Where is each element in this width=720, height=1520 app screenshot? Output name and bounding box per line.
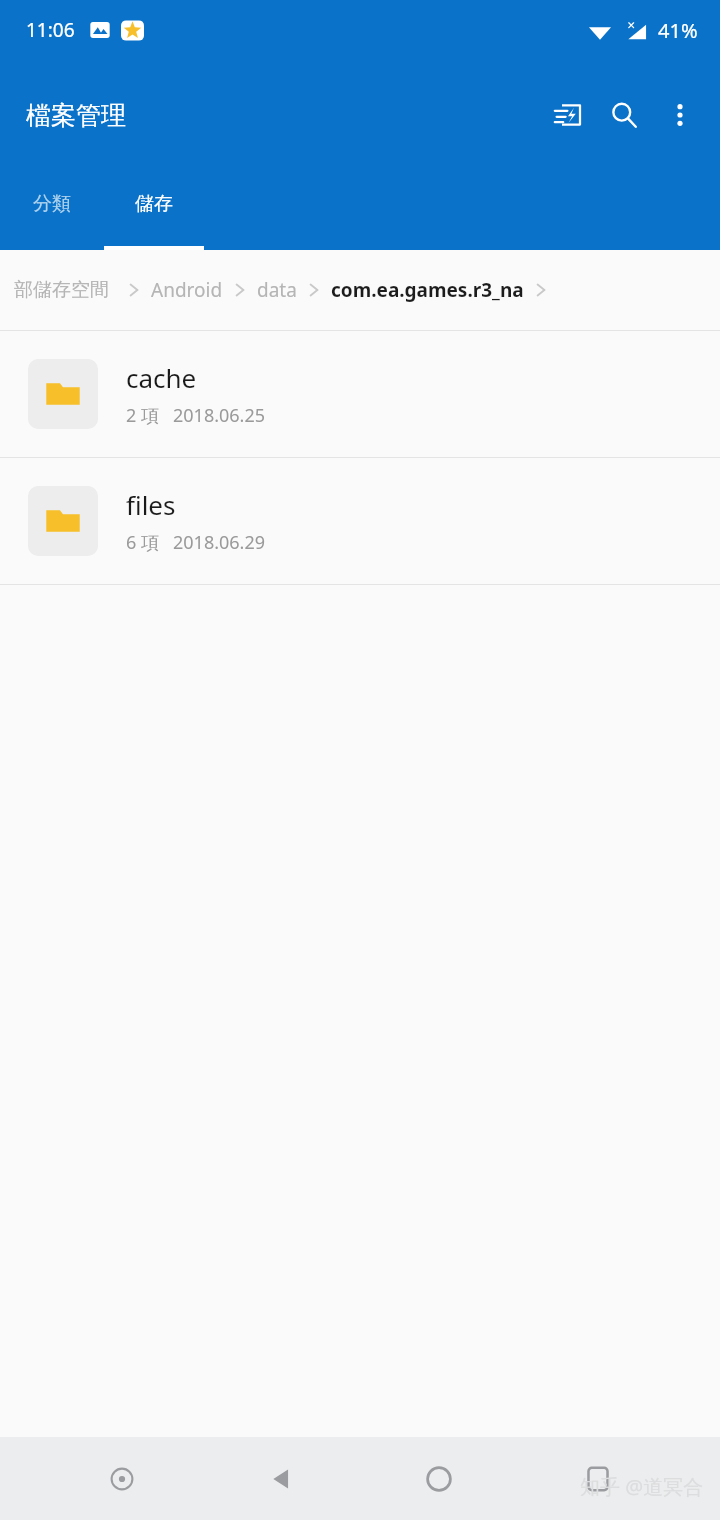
staticText: 儲存 <box>135 192 173 216</box>
button[interactable]: More options <box>652 87 708 143</box>
staticText: 11:06 <box>26 17 75 43</box>
staticText: 檔案管理 <box>26 100 126 131</box>
button[interactable]: Assistant <box>86 1443 158 1515</box>
staticText: 知乎 @道冥合 <box>580 1473 704 1500</box>
staticText: 分類 <box>33 192 71 216</box>
button[interactable]: 儲存 <box>104 170 204 250</box>
button[interactable]: files <box>0 458 720 584</box>
button[interactable]: Quick transfer <box>540 87 596 143</box>
button[interactable]: data <box>257 277 297 303</box>
button[interactable]: Search <box>596 87 652 143</box>
button[interactable]: 分類 <box>0 170 104 250</box>
button[interactable]: 部儲存空間 <box>14 278 109 302</box>
button[interactable]: Android <box>151 277 223 303</box>
staticText: files <box>126 487 176 522</box>
staticText: 2018.06.29 <box>173 530 266 555</box>
button[interactable]: cache <box>0 331 720 457</box>
button[interactable]: com.ea.games.r3_na <box>331 277 524 303</box>
button[interactable]: Back <box>245 1443 317 1515</box>
button[interactable]: Recents <box>562 1443 634 1515</box>
staticText: cache <box>126 360 197 395</box>
staticText: 6 項 <box>126 530 159 555</box>
staticText: 41% <box>658 17 698 44</box>
staticText: 2 項 <box>126 403 159 428</box>
button[interactable]: Home <box>403 1443 475 1515</box>
staticText: 2018.06.25 <box>173 403 266 428</box>
